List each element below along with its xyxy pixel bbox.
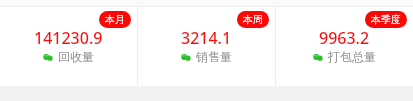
staticText: 销售量	[196, 49, 232, 64]
staticText: 打包总量	[328, 49, 376, 64]
staticText: 3214.1	[181, 27, 232, 49]
button[interactable]: 本季度	[276, 7, 413, 86]
button[interactable]: 本月	[0, 7, 137, 86]
staticText: 回收量	[58, 49, 94, 64]
staticText: 本周	[243, 13, 263, 26]
staticText: 141230.9	[34, 27, 103, 49]
staticText: 本月	[105, 13, 125, 26]
staticText: 本季度	[371, 13, 401, 26]
button[interactable]: 本周	[138, 7, 275, 86]
staticText: 9963.2	[319, 27, 370, 49]
